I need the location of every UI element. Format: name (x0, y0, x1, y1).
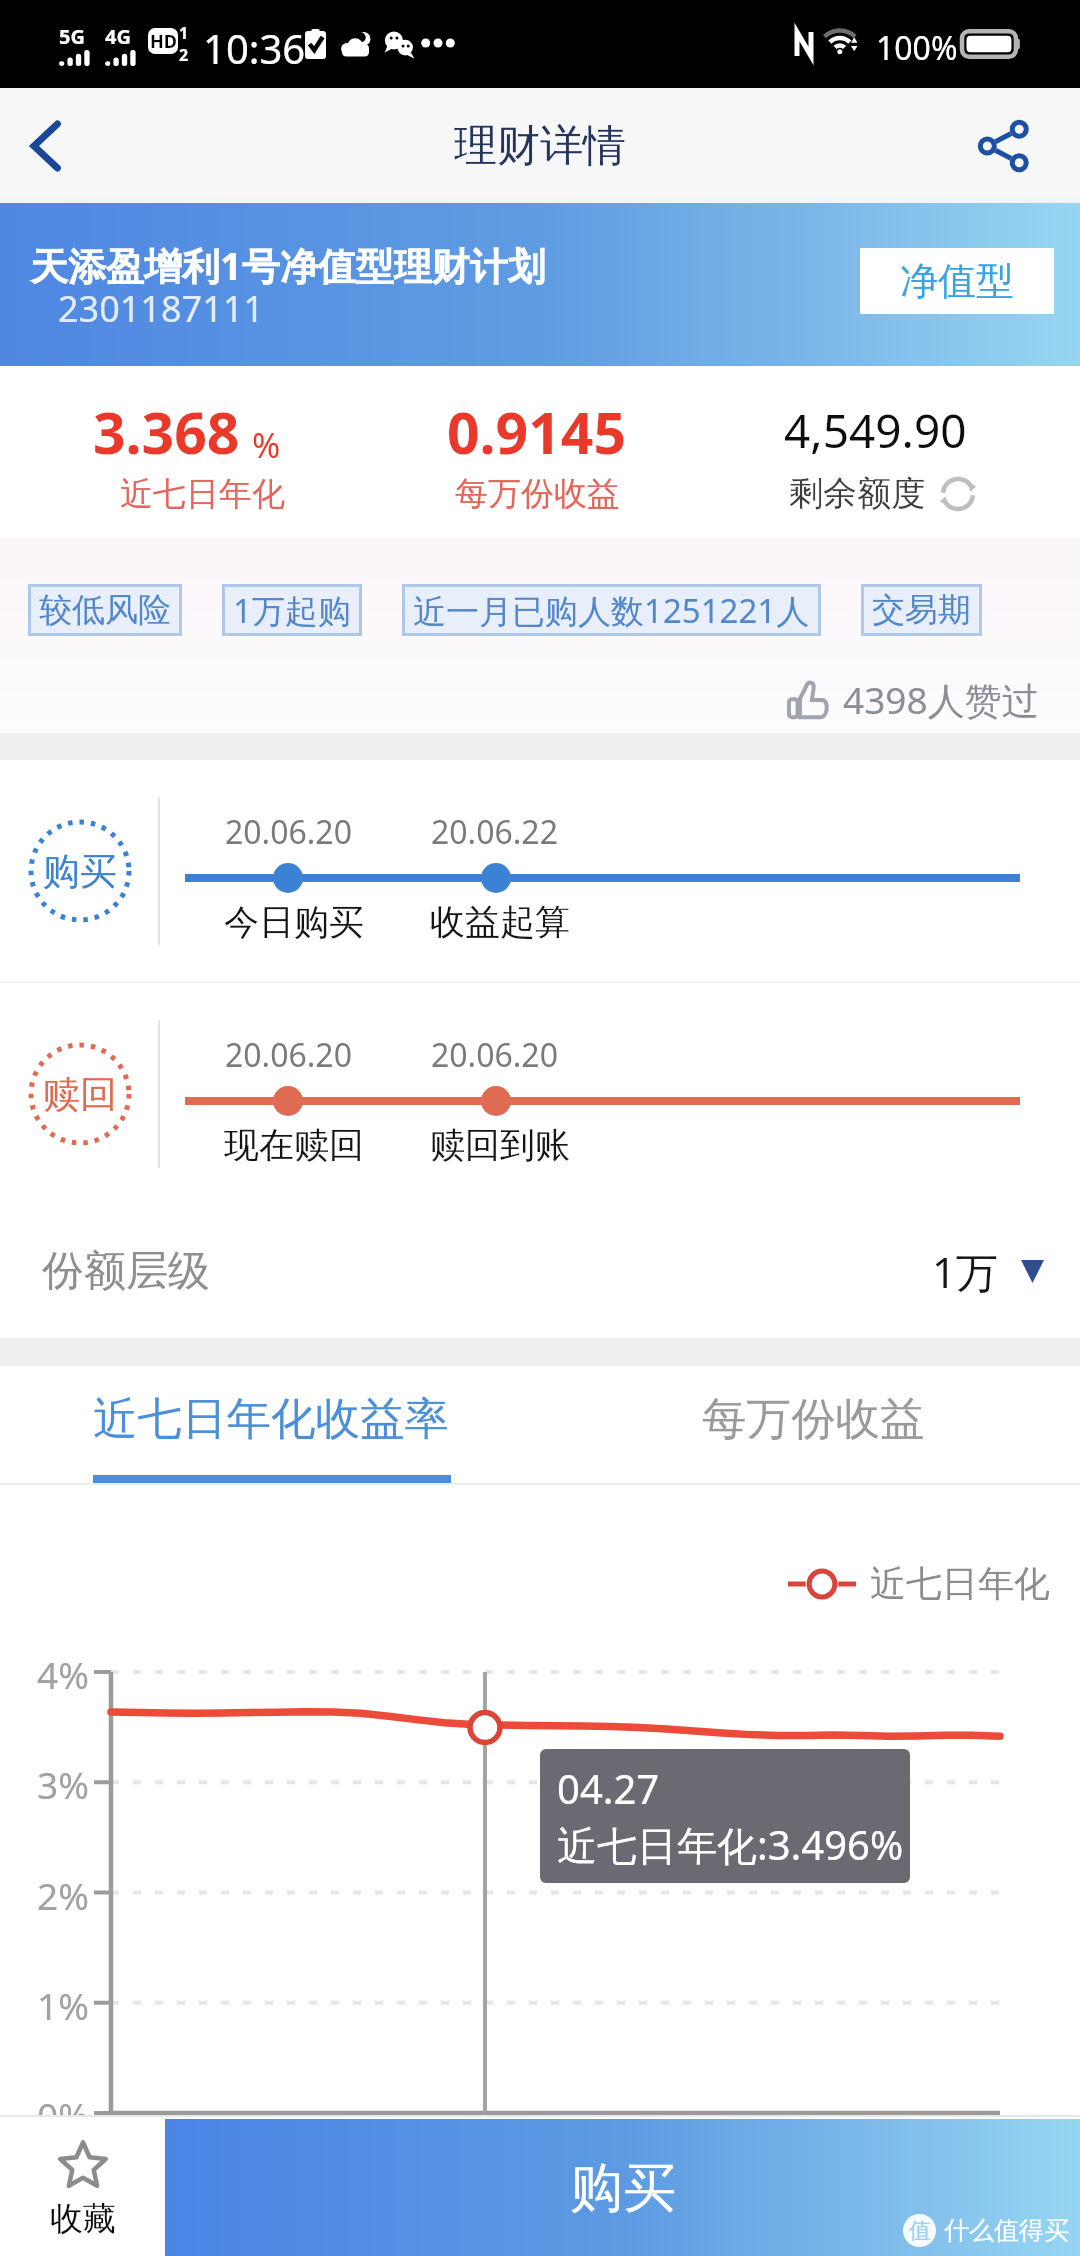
staticText: 10:36 (203, 21, 306, 75)
staticText: 收藏 (50, 2198, 116, 2240)
staticText: 3% (37, 1759, 89, 1809)
staticText: 每万份收益 (455, 473, 620, 515)
staticText: 份额层级 (42, 1245, 210, 1298)
staticText: 1万 (932, 1243, 999, 1300)
staticText: 20.06.22 (431, 810, 558, 854)
staticText: 值 (909, 2217, 931, 2245)
staticText: 购买 (570, 2155, 676, 2222)
staticText: 20.06.20 (225, 810, 352, 854)
staticText: 20.06.20 (431, 1033, 558, 1077)
button[interactable]: Back (0, 88, 92, 203)
button[interactable]: 份额层级 (42, 1204, 1044, 1338)
staticText: 3.368 (93, 393, 240, 471)
staticText: 购买 (43, 848, 117, 895)
staticText: 赎回到账 (430, 1123, 570, 1167)
staticText: 现在赎回 (224, 1123, 364, 1167)
button[interactable]: 1万起购 (233, 584, 351, 636)
staticText: 赎回 (43, 1071, 117, 1118)
staticText: 0.9145 (447, 393, 627, 471)
button[interactable]: Share (948, 88, 1058, 203)
staticText: 2% (37, 1870, 89, 1920)
staticText: 20.06.20 (225, 1033, 352, 1077)
staticText: 近七日年化:3.496% (557, 1817, 904, 1872)
button[interactable]: 较低风险 (39, 584, 171, 636)
staticText: 剩余额度 (789, 472, 925, 515)
staticText: 近七日年化 (120, 473, 285, 515)
staticText: 近七日年化收益率 (93, 1391, 449, 1447)
staticText: 每万份收益 (702, 1391, 925, 1447)
staticText: 今日购买 (224, 900, 364, 944)
staticText: 04.27 (557, 1761, 660, 1815)
staticText: 净值型 (900, 257, 1014, 305)
staticText: 4398人赞过 (843, 674, 1039, 725)
staticText: 什么值得买 (944, 2215, 1069, 2246)
staticText: 5G (59, 23, 85, 50)
staticText: 0% (37, 2090, 89, 2140)
staticText: 交易期 (872, 589, 971, 631)
staticText: 收益起算 (430, 900, 570, 944)
staticText: 较低风险 (39, 589, 171, 631)
button[interactable] (540, 1366, 1080, 1485)
button[interactable]: 收藏 (0, 2115, 165, 2256)
staticText: 1% (37, 1980, 89, 2030)
button[interactable]: 购买 (165, 2119, 1080, 2256)
staticText: 近一月已购人数1251221人 (413, 588, 810, 633)
button[interactable] (0, 1366, 540, 1485)
button[interactable]: 近一月已购人数1251221人 (413, 584, 810, 636)
staticText: 1万起购 (233, 588, 351, 633)
staticText: HD (150, 29, 177, 54)
staticText: 2301187111 (58, 284, 264, 333)
staticText: 2 (179, 44, 189, 66)
staticText: % (252, 422, 281, 468)
staticText: 理财详情 (454, 119, 626, 173)
staticText: 4,549.90 (784, 399, 967, 462)
button[interactable]: 净值型 (860, 248, 1054, 314)
button[interactable]: 交易期 (872, 584, 971, 636)
staticText: 4G (105, 23, 131, 50)
staticText: 1 (179, 22, 189, 44)
staticText: 4% (37, 1649, 89, 1699)
staticText: 天添盈增利1号净值型理财计划 (30, 239, 546, 291)
staticText: 近七日年化 (870, 1561, 1050, 1606)
staticText: 100% (876, 26, 958, 70)
